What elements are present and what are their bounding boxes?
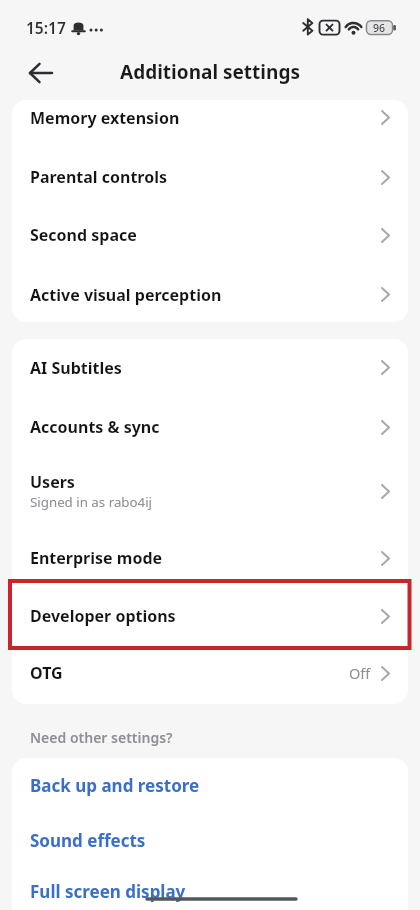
button[interactable]: Full screen display	[12, 867, 408, 910]
button[interactable]: Sound effects	[12, 813, 408, 867]
button[interactable]: Second space	[12, 207, 408, 267]
staticText: 96	[373, 21, 386, 35]
staticText: 15:17	[26, 17, 66, 38]
button[interactable]: AI Subtitles	[12, 339, 408, 396]
button[interactable]: Accounts & sync	[12, 396, 408, 458]
staticText: Additional settings	[120, 59, 300, 85]
staticText: Developer options	[30, 605, 176, 627]
staticText: Accounts & sync	[30, 416, 160, 438]
staticText: Active visual perception	[30, 284, 222, 306]
button[interactable]: Memory extension	[12, 100, 408, 147]
button[interactable]: Users	[12, 458, 408, 530]
staticText: Off	[349, 663, 371, 683]
button[interactable]: Active visual perception	[12, 267, 408, 322]
staticText: Signed in as rabo4ij	[30, 493, 153, 511]
staticText: Memory extension	[30, 107, 180, 129]
staticText: Back up and restore	[30, 774, 200, 797]
staticText: Users	[30, 471, 75, 493]
staticText: Enterprise mode	[30, 547, 163, 569]
staticText: Sound effects	[30, 829, 146, 852]
staticText: OTG	[30, 662, 63, 684]
button[interactable]: Parental controls	[12, 147, 408, 207]
staticText: Second space	[30, 224, 137, 246]
button[interactable]: Back up and restore	[12, 758, 408, 813]
button[interactable]: Developer options	[12, 590, 408, 646]
staticText: Need other settings?	[30, 728, 173, 747]
staticText: Parental controls	[30, 166, 167, 188]
staticText: AI Subtitles	[30, 357, 122, 379]
button[interactable]: OTG	[12, 646, 408, 704]
button[interactable]	[22, 54, 60, 92]
button[interactable]: Enterprise mode	[12, 530, 408, 590]
staticText: Full screen display	[30, 880, 186, 903]
